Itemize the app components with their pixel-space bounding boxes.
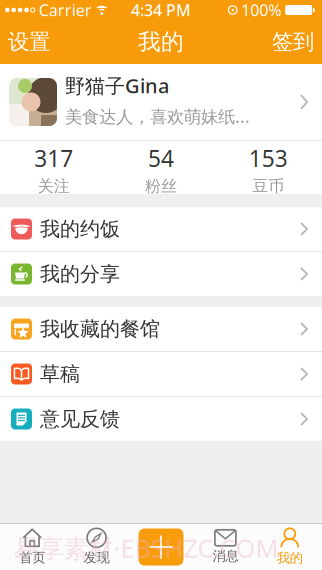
staticText: 意见反馈	[40, 407, 120, 431]
staticText: 我的约饭	[40, 217, 120, 241]
staticText: 豆币	[252, 176, 284, 196]
button[interactable]: 消息	[193, 524, 258, 570]
button[interactable]: 发布	[129, 524, 193, 570]
button[interactable]: 153	[215, 143, 322, 196]
button[interactable]: 意见反馈	[0, 397, 322, 441]
button[interactable]: 我收藏的餐馆	[0, 307, 322, 351]
staticText: 我的	[138, 28, 184, 56]
staticText: 粉丝	[145, 176, 177, 196]
button[interactable]: 草稿	[0, 352, 322, 396]
staticText: 我收藏的餐馆	[40, 317, 160, 341]
staticText: Carrier	[39, 0, 92, 21]
staticText: 153	[249, 143, 288, 173]
staticText: 4:34 PM	[131, 0, 191, 21]
button[interactable]: 签到	[272, 29, 314, 55]
staticText: 消息	[212, 548, 238, 564]
staticText: 易享素材·EBSHZC.COM	[13, 531, 278, 565]
staticText: 签到	[272, 29, 314, 55]
button[interactable]: 317	[0, 143, 107, 196]
staticText: 317	[34, 143, 73, 173]
staticText: 我的	[277, 550, 303, 566]
staticText: 草稿	[40, 362, 80, 386]
button[interactable]: 首页	[0, 524, 64, 570]
staticText: 首页	[19, 549, 45, 566]
staticText: 我的分享	[40, 262, 120, 286]
button[interactable]: 我的约饭	[0, 207, 322, 251]
staticText: 野猫子Gina	[65, 72, 169, 99]
staticText: 关注	[38, 176, 70, 196]
staticText: 设置	[8, 29, 50, 55]
button[interactable]: 野猫子Gina	[0, 64, 322, 140]
button[interactable]: 设置	[8, 29, 50, 55]
staticText: 100%	[241, 0, 281, 21]
button[interactable]: 54	[107, 143, 215, 196]
staticText: 54	[148, 143, 174, 173]
staticText: 美食达人，喜欢萌妹纸...	[65, 105, 250, 128]
button[interactable]: 我的	[258, 524, 322, 570]
button[interactable]: 我的分享	[0, 252, 322, 296]
button[interactable]: 发现	[64, 524, 129, 570]
staticText: 发现	[84, 549, 110, 566]
